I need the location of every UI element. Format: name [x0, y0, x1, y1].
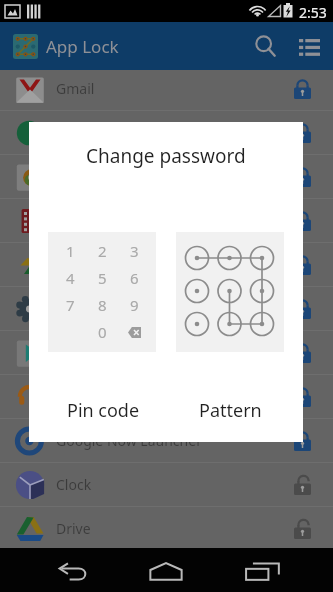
button[interactable]: Google Now Launcher [0, 419, 333, 462]
staticText: 4 [66, 268, 75, 288]
button[interactable]: Pin code [43, 394, 163, 426]
button[interactable]: Search [242, 22, 288, 70]
button[interactable]: Clock [0, 463, 333, 506]
staticText: App Lock [46, 35, 119, 58]
staticText: Change password [86, 143, 246, 169]
staticText: Play Store [56, 343, 122, 362]
button[interactable]: Pattern [170, 394, 290, 426]
staticText: 0 [98, 322, 107, 342]
staticText: 2 [98, 241, 107, 261]
staticText: Pin code [67, 398, 140, 423]
button[interactable]: Drive [0, 507, 333, 550]
button[interactable]: More options [288, 22, 330, 70]
staticText: Gmail [56, 79, 95, 98]
staticText: 3 [130, 241, 139, 261]
button[interactable]: Camera [0, 155, 333, 198]
staticText: 7 [66, 295, 75, 315]
button[interactable] [176, 232, 284, 352]
button[interactable]: Play Store [0, 331, 333, 374]
button[interactable]: Music [0, 375, 333, 418]
staticText: 9 [130, 295, 139, 315]
button[interactable]: Home [131, 551, 201, 592]
staticText: Pattern [199, 398, 262, 423]
staticText: Drive [56, 519, 91, 538]
button[interactable]: Gmail [0, 67, 333, 110]
staticText: Google Now Launcher [56, 431, 202, 450]
staticText: Clock [56, 475, 92, 494]
staticText: 8 [98, 295, 107, 315]
staticText: Music [56, 387, 95, 406]
button[interactable]: 1 [48, 232, 156, 352]
button[interactable]: Photos [0, 243, 333, 286]
button[interactable]: Recent apps [228, 551, 298, 592]
staticText: 5 [98, 268, 107, 288]
staticText: Settings [56, 299, 110, 318]
button[interactable]: Settings [0, 287, 333, 330]
button[interactable]: Google Play services [0, 111, 333, 154]
staticText: Photos [56, 255, 102, 274]
staticText: 1 [66, 241, 75, 261]
staticText: 2:53 [299, 3, 327, 19]
staticText: 6 [130, 268, 139, 288]
button[interactable]: Back [38, 551, 108, 592]
button[interactable]: YouTube [0, 199, 333, 242]
